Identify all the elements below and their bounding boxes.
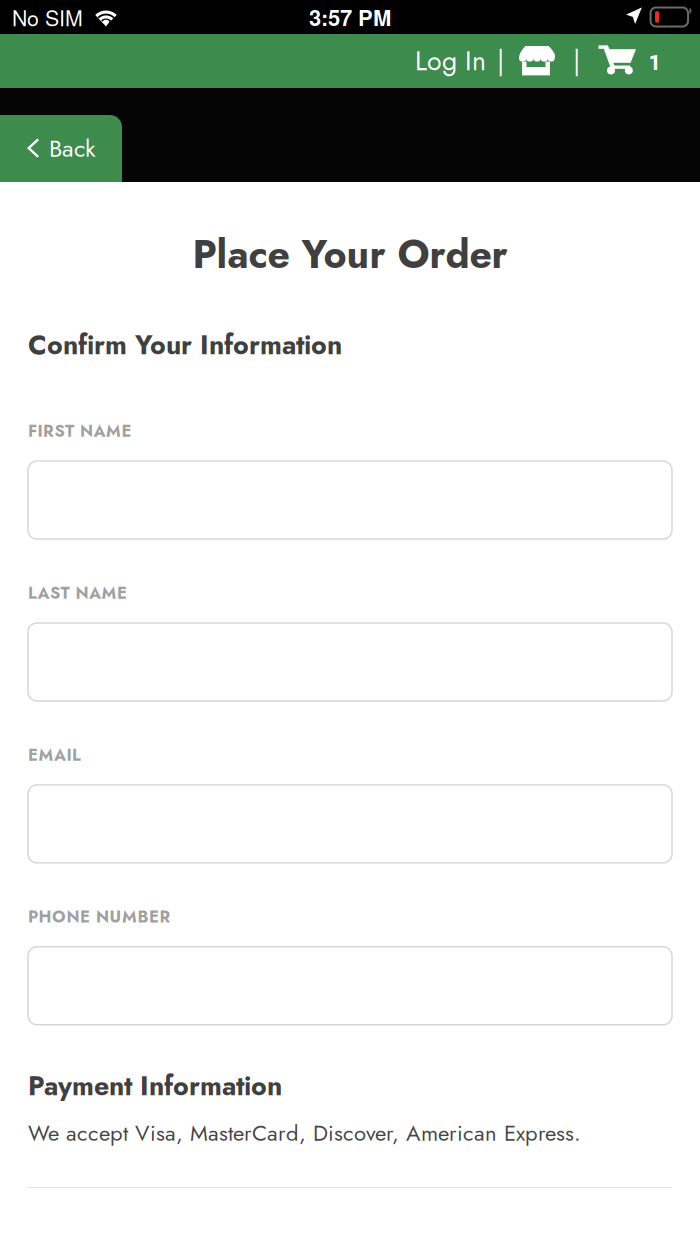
staticText: | xyxy=(497,42,504,80)
button[interactable]: Cart, 1 item xyxy=(598,38,659,84)
staticText: 1 xyxy=(649,48,659,77)
staticText: We accept Visa, MasterCard, Discover, Am… xyxy=(28,1117,581,1149)
staticText: LAST NAME xyxy=(28,581,127,605)
staticText: Payment Information xyxy=(28,1067,282,1105)
staticText: PHONE NUMBER xyxy=(28,905,170,929)
staticText: 3:57 PM xyxy=(309,1,391,33)
staticText: Place Your Order xyxy=(192,226,507,283)
staticText: EMAIL xyxy=(28,743,81,767)
staticText: Log In xyxy=(415,42,486,80)
button[interactable]: Store xyxy=(519,42,555,80)
button[interactable]: Log In xyxy=(415,34,486,88)
staticText: No SIM xyxy=(12,2,83,32)
staticText: Confirm Your Information xyxy=(28,326,342,364)
staticText: Back xyxy=(49,131,96,166)
staticText: | xyxy=(573,42,580,80)
button[interactable]: Back xyxy=(0,115,122,182)
staticText: FIRST NAME xyxy=(28,419,131,443)
